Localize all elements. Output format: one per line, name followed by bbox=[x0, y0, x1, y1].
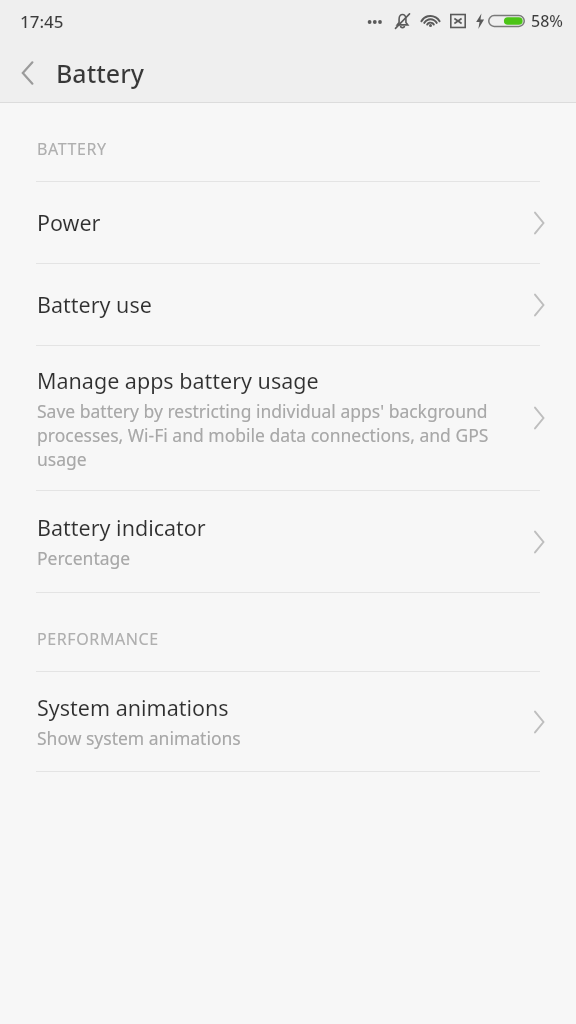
button[interactable]: Power bbox=[0, 182, 576, 263]
staticText: Battery use bbox=[37, 290, 152, 319]
staticText: Percentage bbox=[37, 546, 131, 570]
staticText: Battery indicator bbox=[37, 513, 206, 542]
staticText: System animations bbox=[37, 693, 229, 722]
staticText: PERFORMANCE bbox=[37, 628, 159, 650]
staticText: Show system animations bbox=[37, 726, 241, 750]
staticText: Power bbox=[37, 208, 101, 237]
staticText: Manage apps battery usage bbox=[37, 366, 319, 395]
staticText: 17:45 bbox=[20, 10, 64, 33]
button[interactable]: Manage apps battery usage bbox=[0, 346, 576, 490]
staticText: BATTERY bbox=[37, 138, 107, 160]
staticText: Battery bbox=[56, 56, 144, 90]
button[interactable]: Battery use bbox=[0, 264, 576, 345]
staticText: Save battery by restricting individual a… bbox=[37, 399, 506, 471]
button[interactable]: Back bbox=[0, 42, 56, 103]
button[interactable]: Battery indicator bbox=[0, 491, 576, 592]
staticText: 58% bbox=[531, 10, 563, 32]
button[interactable]: System animations bbox=[0, 672, 576, 771]
